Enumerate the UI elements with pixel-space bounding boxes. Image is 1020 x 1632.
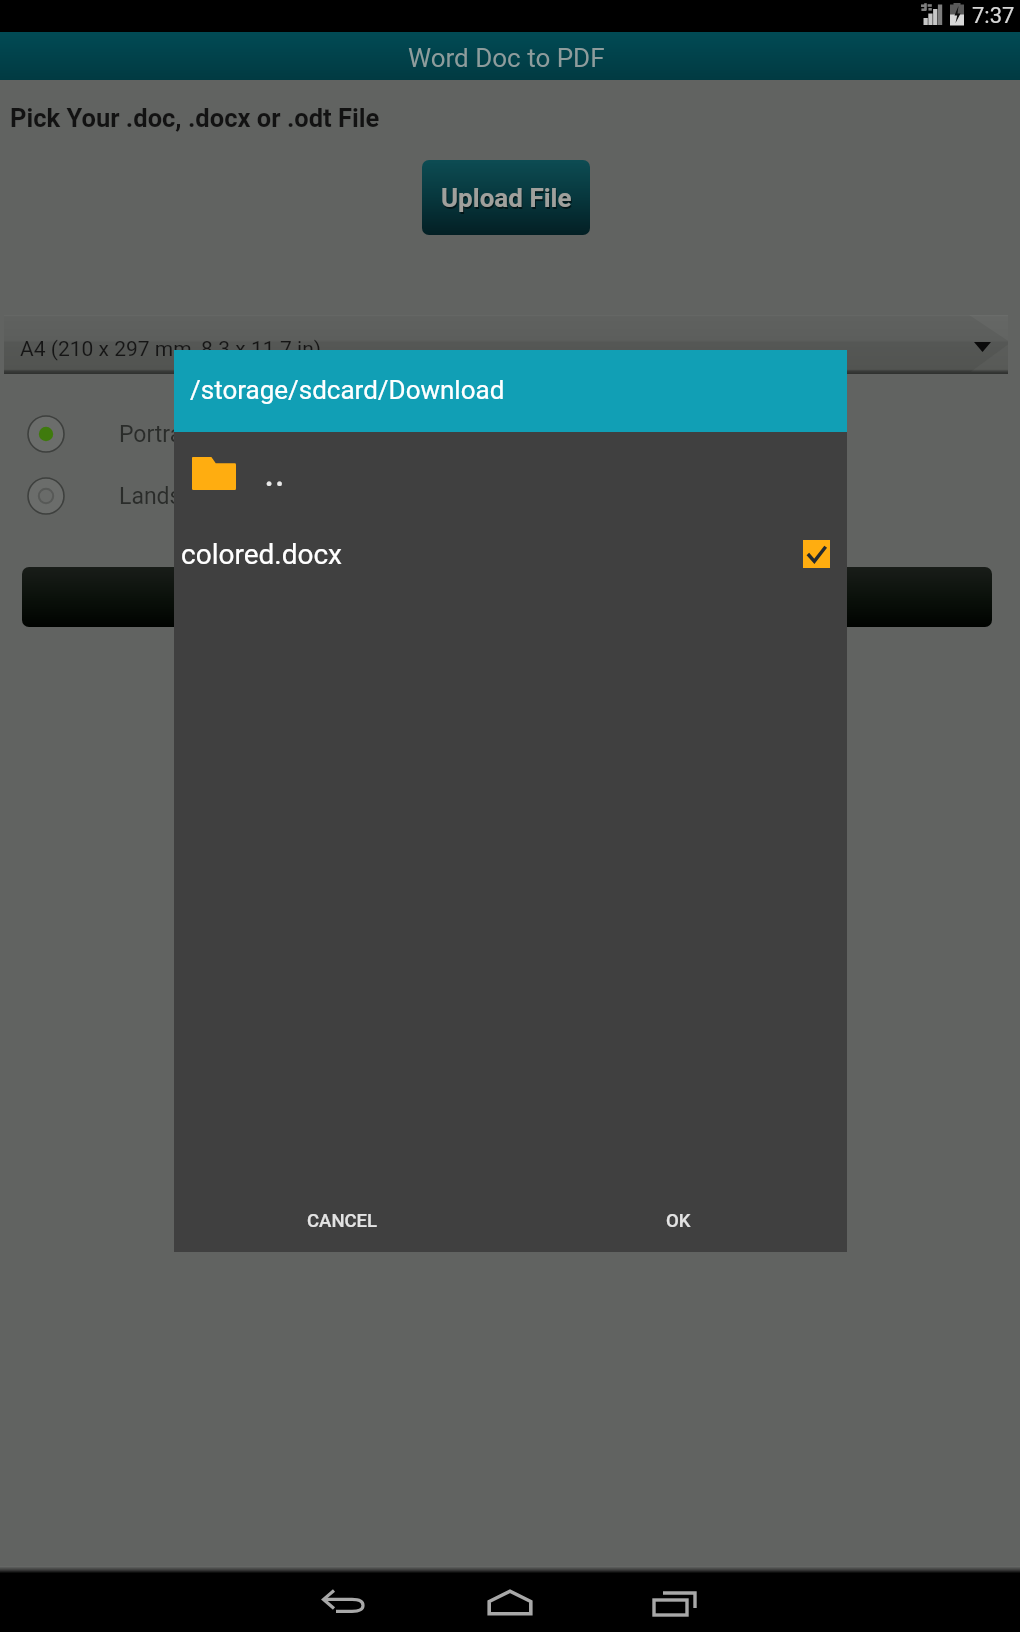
staticText: /storage/sdcard/Download xyxy=(190,375,505,405)
button[interactable]: colored.docx xyxy=(174,498,847,570)
staticText: Word Doc to PDF xyxy=(408,43,605,73)
staticText: Landscape xyxy=(119,483,232,510)
staticText: Portrait xyxy=(119,421,196,448)
staticText: Upload File xyxy=(441,183,572,213)
button[interactable]: Select colored.docx xyxy=(803,540,830,568)
staticText: .. xyxy=(264,449,286,496)
button[interactable]: Home xyxy=(464,1577,556,1627)
staticText: Pick Your .doc, .docx or .odt File xyxy=(10,103,380,133)
button[interactable]: CANCEL xyxy=(174,1190,510,1252)
staticText: 7:37 xyxy=(972,3,1015,29)
staticText: colored.docx xyxy=(181,538,342,571)
staticText: CANCEL xyxy=(307,1210,378,1232)
button[interactable]: .. xyxy=(174,432,847,498)
button[interactable]: A4 (210 x 297 mm, 8.3 x 11.7 in) xyxy=(4,315,1008,374)
button[interactable]: OK xyxy=(510,1190,847,1252)
staticText: OK xyxy=(666,1210,691,1232)
button[interactable]: Back xyxy=(300,1577,392,1627)
button[interactable]: Recent apps xyxy=(628,1577,720,1627)
button[interactable]: Upload File xyxy=(422,160,590,235)
button[interactable]: Landscape xyxy=(0,476,1020,516)
staticText: Upload File xyxy=(442,185,573,215)
staticText: A4 (210 x 297 mm, 8.3 x 11.7 in) xyxy=(20,337,322,362)
button[interactable]: Portrait xyxy=(0,414,1020,454)
button[interactable]: Convert to PDF xyxy=(22,567,992,627)
